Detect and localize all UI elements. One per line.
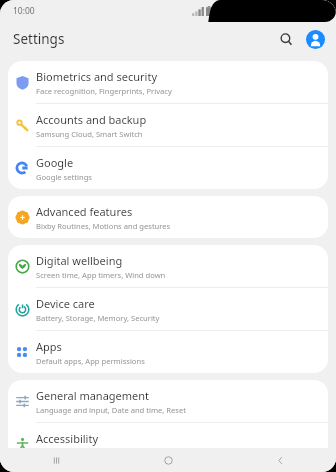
staticText: Settings — [13, 30, 65, 48]
button[interactable]: Back — [224, 448, 336, 472]
staticText: Digital wellbeing — [36, 253, 123, 268]
button[interactable]: Google — [8, 147, 328, 189]
button[interactable]: Advanced features — [8, 196, 328, 238]
button[interactable]: Biometrics and security — [8, 61, 328, 103]
button[interactable]: Home — [112, 448, 224, 472]
staticText: General management — [36, 388, 150, 403]
staticText: Google — [36, 155, 74, 170]
staticText: Accessibility — [36, 431, 99, 446]
staticText: Apps — [36, 339, 62, 354]
button[interactable]: Recents — [0, 448, 112, 472]
staticText: Face recognition, Fingerprints, Privacy — [36, 86, 172, 96]
button[interactable]: General management — [8, 380, 328, 422]
staticText: Bixby Routines, Motions and gestures — [36, 221, 171, 231]
button[interactable]: Search — [273, 26, 299, 52]
staticText: Device care — [36, 296, 95, 311]
staticText: Voice Assistant, Mono audio, Assistant m… — [36, 448, 195, 458]
button[interactable]: Digital wellbeing — [8, 245, 328, 287]
button[interactable]: Apps — [8, 331, 328, 373]
staticText: Samsung Cloud, Smart Switch — [36, 129, 143, 139]
staticText: Default apps, App permissions — [36, 356, 145, 366]
staticText: 10:00 — [13, 5, 35, 17]
staticText: Google settings — [36, 172, 92, 182]
button[interactable]: Accounts and backup — [8, 104, 328, 146]
button[interactable]: Accessibility — [8, 423, 328, 465]
staticText: Battery, Storage, Memory, Security — [36, 313, 160, 323]
button[interactable]: Device care — [8, 288, 328, 330]
staticText: Screen time, App timers, Wind down — [36, 270, 166, 280]
staticText: Biometrics and security — [36, 69, 157, 84]
staticText: Language and input, Date and time, Reset — [36, 405, 187, 415]
button[interactable]: Account — [303, 27, 327, 51]
staticText: Advanced features — [36, 204, 133, 219]
staticText: Accounts and backup — [36, 112, 147, 127]
